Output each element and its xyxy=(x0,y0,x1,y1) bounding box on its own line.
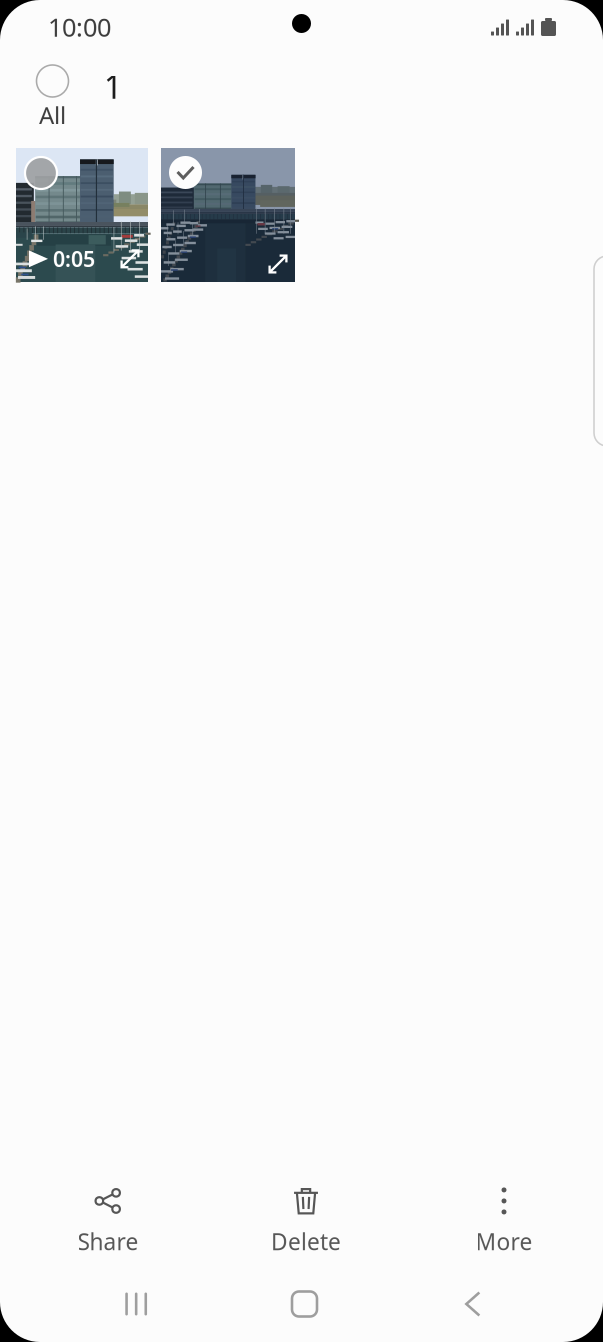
button[interactable]: 0:05 xyxy=(16,148,148,282)
staticText: More xyxy=(475,1226,532,1256)
staticText: 10:00 xyxy=(48,10,111,44)
staticText: 0:05 xyxy=(53,245,95,273)
button[interactable] xyxy=(161,148,295,282)
staticText: 1 xyxy=(104,65,122,107)
staticText: Delete xyxy=(271,1226,341,1256)
button[interactable]: Delete xyxy=(207,1186,405,1258)
staticText: All xyxy=(39,99,66,131)
button[interactable]: All xyxy=(17,65,88,131)
button[interactable]: Home xyxy=(220,1266,389,1342)
button[interactable]: Share xyxy=(9,1186,207,1258)
button[interactable]: More xyxy=(405,1186,603,1258)
button[interactable]: Back xyxy=(389,1266,557,1342)
button[interactable]: Recent apps xyxy=(52,1266,220,1342)
staticText: Share xyxy=(77,1226,138,1256)
